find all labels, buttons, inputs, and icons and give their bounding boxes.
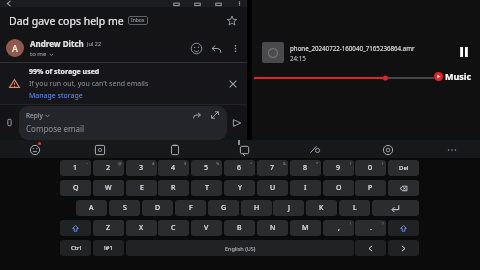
staticText: ! bbox=[350, 221, 352, 226]
staticText: 5 bbox=[204, 163, 209, 173]
button[interactable]: Star bbox=[226, 15, 238, 27]
staticText: Inbox bbox=[131, 17, 145, 24]
button[interactable]: E bbox=[126, 180, 157, 196]
staticText: J bbox=[288, 203, 290, 213]
button[interactable]: F bbox=[175, 200, 206, 216]
button[interactable]: Symbols keyboard bbox=[93, 240, 124, 256]
button[interactable]: A bbox=[76, 200, 107, 216]
staticText: Jul 22 bbox=[87, 40, 102, 47]
button[interactable]: More options bbox=[235, 0, 244, 7]
button[interactable]: K bbox=[306, 200, 337, 216]
staticText: C bbox=[171, 223, 176, 233]
staticText: Dad gave cops help me bbox=[9, 14, 124, 28]
button[interactable]: Dismiss bbox=[227, 78, 239, 90]
staticText: * bbox=[316, 161, 319, 166]
button[interactable]: R bbox=[158, 180, 189, 196]
staticText: to me bbox=[30, 50, 47, 58]
button[interactable]: N bbox=[257, 220, 288, 236]
button[interactable]: I bbox=[290, 180, 321, 196]
button[interactable]: Back bbox=[4, 0, 14, 7]
staticText: O bbox=[336, 183, 342, 193]
button[interactable]: 3 bbox=[126, 160, 157, 176]
button[interactable]: Music bbox=[434, 70, 472, 82]
staticText: E bbox=[140, 183, 144, 193]
button[interactable]: X bbox=[126, 220, 157, 236]
button[interactable]: Expand bbox=[210, 110, 220, 120]
button[interactable]: Reply bbox=[26, 111, 50, 120]
staticText: 7 bbox=[270, 163, 275, 173]
button[interactable]: D bbox=[142, 200, 173, 216]
button[interactable]: Move cursor left bbox=[355, 240, 386, 256]
button[interactable]: Emoji bbox=[28, 143, 42, 157]
button[interactable]: Archive bbox=[172, 0, 181, 7]
button[interactable]: 8 bbox=[290, 160, 321, 176]
button[interactable]: H bbox=[241, 200, 272, 216]
button[interactable]: Enter bbox=[372, 200, 419, 216]
button[interactable]: Backspace bbox=[388, 180, 419, 196]
button[interactable]: Pause bbox=[456, 44, 472, 60]
button[interactable]: Move cursor right bbox=[388, 240, 419, 256]
button[interactable]: C bbox=[158, 220, 189, 236]
staticText: 6 bbox=[237, 163, 242, 173]
button[interactable]: More options bbox=[230, 43, 241, 54]
staticText: D bbox=[155, 203, 161, 213]
button[interactable]: . bbox=[355, 220, 386, 236]
staticText: 1 bbox=[73, 163, 78, 173]
staticText: F bbox=[189, 203, 193, 213]
staticText: 4 bbox=[171, 163, 176, 173]
button[interactable]: A bbox=[6, 39, 24, 57]
staticText: L bbox=[353, 203, 357, 213]
staticText: 9 bbox=[336, 163, 341, 173]
button[interactable]: , bbox=[323, 220, 354, 236]
button[interactable]: S bbox=[109, 200, 140, 216]
staticText: Ctrl bbox=[71, 244, 81, 252]
button[interactable]: Settings bbox=[381, 143, 395, 157]
button[interactable]: 0 bbox=[355, 160, 386, 176]
button[interactable]: Add emoji reaction bbox=[190, 42, 203, 55]
button[interactable]: T bbox=[191, 180, 222, 196]
button[interactable]: J bbox=[273, 200, 304, 216]
button[interactable]: Attach file bbox=[4, 117, 15, 128]
button[interactable]: Q bbox=[60, 180, 91, 196]
button[interactable]: 5 bbox=[191, 160, 222, 176]
button[interactable]: O bbox=[323, 180, 354, 196]
button[interactable]: W bbox=[93, 180, 124, 196]
button[interactable]: 1 bbox=[60, 160, 91, 176]
button[interactable]: Reply bbox=[210, 42, 223, 55]
staticText: T bbox=[205, 183, 209, 193]
button[interactable]: 4 bbox=[158, 160, 189, 176]
staticText: B bbox=[237, 223, 242, 233]
button[interactable]: Z bbox=[93, 220, 124, 236]
button[interactable]: Shift bbox=[388, 220, 419, 236]
button[interactable]: More bbox=[445, 143, 459, 157]
button[interactable]: 2 bbox=[93, 160, 124, 176]
button[interactable]: P bbox=[355, 180, 386, 196]
button[interactable]: Stickers bbox=[93, 143, 107, 157]
button[interactable]: Text editing bbox=[308, 143, 322, 157]
button[interactable]: Send bbox=[231, 117, 243, 129]
button[interactable]: Forward bbox=[192, 110, 202, 120]
button[interactable]: Ctrl bbox=[60, 240, 91, 256]
button[interactable]: Space bbox=[126, 240, 354, 256]
button[interactable]: Translate bbox=[238, 143, 252, 157]
button[interactable]: Inbox bbox=[131, 17, 145, 24]
button[interactable]: V bbox=[191, 220, 222, 236]
button[interactable]: Delete bbox=[193, 0, 202, 7]
button[interactable]: L bbox=[339, 200, 370, 216]
button[interactable]: Y bbox=[224, 180, 255, 196]
staticText: R bbox=[171, 183, 176, 193]
button[interactable]: 6 bbox=[224, 160, 255, 176]
button[interactable]: 9 bbox=[323, 160, 354, 176]
button[interactable]: Mark unread bbox=[214, 0, 223, 7]
button[interactable]: Delete bbox=[388, 160, 419, 176]
staticText: & bbox=[283, 161, 286, 166]
button[interactable]: Manage storage bbox=[29, 91, 83, 101]
button[interactable]: 7 bbox=[257, 160, 288, 176]
button[interactable]: G bbox=[208, 200, 239, 216]
button[interactable]: M bbox=[290, 220, 321, 236]
staticText: @ bbox=[118, 161, 122, 166]
button[interactable]: Shift bbox=[60, 220, 91, 236]
button[interactable]: U bbox=[257, 180, 288, 196]
button[interactable]: Clipboard bbox=[168, 143, 182, 157]
button[interactable]: B bbox=[224, 220, 255, 236]
